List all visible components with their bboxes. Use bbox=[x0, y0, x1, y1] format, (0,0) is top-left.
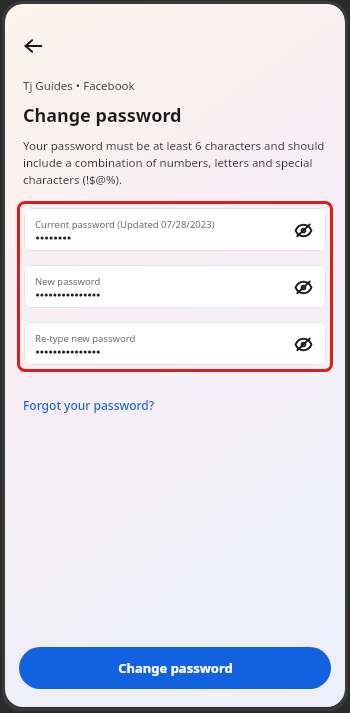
button[interactable]: Back bbox=[13, 26, 53, 66]
button[interactable]: Re-type new password bbox=[24, 322, 326, 365]
button[interactable]: Show password bbox=[288, 329, 318, 359]
staticText: Tj Guides • Facebook bbox=[23, 78, 135, 94]
staticText: Re-type new password bbox=[35, 332, 136, 345]
staticText: New password bbox=[35, 275, 101, 288]
button[interactable]: Show password bbox=[288, 272, 318, 302]
button[interactable]: New password bbox=[24, 265, 326, 308]
staticText: Change password bbox=[23, 103, 182, 128]
staticText: Forgot your password? bbox=[23, 397, 155, 413]
button[interactable]: Change password bbox=[19, 647, 331, 689]
button[interactable]: Show password bbox=[288, 215, 318, 245]
staticText: Current password (Updated 07/28/2023) bbox=[35, 218, 215, 231]
staticText: Your password must be at least 6 charact… bbox=[23, 138, 329, 188]
button[interactable]: Forgot your password? bbox=[19, 394, 159, 416]
staticText: Change password bbox=[118, 659, 233, 677]
button[interactable]: Current password (Updated 07/28/2023) bbox=[24, 208, 326, 251]
